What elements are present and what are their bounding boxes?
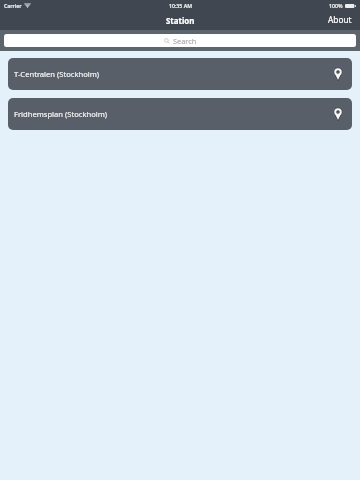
other: Show on map [334, 108, 342, 120]
staticText: 100% [329, 2, 343, 9]
staticText: T-Centralen (Stockholm) [14, 69, 100, 79]
staticText: Fridhemsplan (Stockholm) [14, 109, 108, 119]
button[interactable]: About [320, 15, 360, 30]
staticText: Carrier [4, 2, 22, 9]
button[interactable]: Fridhemsplan (Stockholm) [8, 98, 352, 130]
staticText: 10:35 AM [169, 2, 192, 9]
staticText: Station [166, 16, 195, 27]
staticText: About [328, 14, 352, 25]
button[interactable]: Search [4, 34, 356, 47]
other: Show on map [334, 68, 342, 80]
staticText: Search [173, 36, 197, 46]
button[interactable]: T-Centralen (Stockholm) [8, 58, 352, 90]
